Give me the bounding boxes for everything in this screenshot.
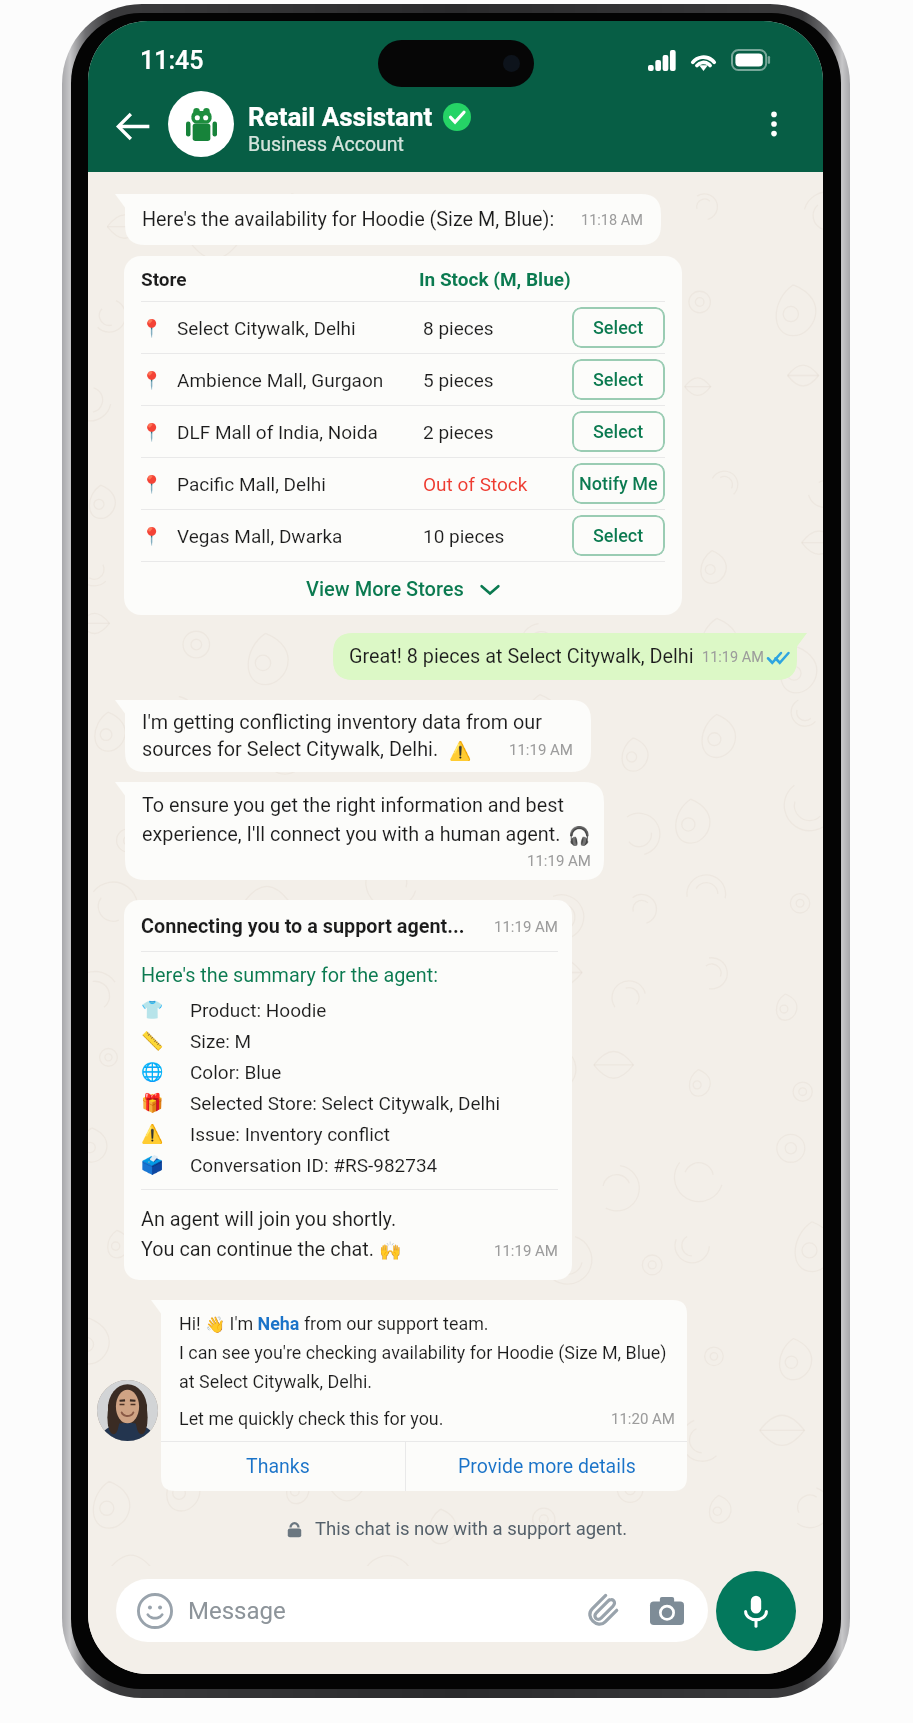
staticText: Connecting you to a support agent... [141, 915, 465, 938]
staticText: To ensure you get the right information … [142, 794, 564, 817]
staticText: Great! 8 pieces at Select Citywalk, Delh… [349, 645, 694, 668]
staticText: Notify Me [579, 473, 658, 494]
staticText: Selected Store: Select Citywalk, Delhi [190, 1092, 501, 1114]
staticText: Message [188, 1597, 286, 1625]
staticText: Let me quickly check this for you. [179, 1408, 444, 1429]
staticText: 11:19 AM [509, 741, 573, 759]
staticText: 🌐 [141, 1061, 164, 1082]
staticText: 📍 [141, 474, 163, 494]
staticText: In Stock (M, Blue) [419, 268, 571, 290]
staticText: Provide more details [458, 1455, 636, 1478]
staticText: Retail Assistant [248, 102, 433, 132]
staticText: View More Stores [306, 577, 464, 600]
staticText: ⚠️ [141, 1123, 164, 1144]
button[interactable]: Camera [648, 1592, 686, 1630]
staticText: experience, I'll connect you with a huma… [142, 823, 561, 846]
staticText: 5 pieces [423, 369, 572, 391]
button[interactable]: Provide more details [406, 1442, 687, 1491]
staticText: 📍 [141, 526, 163, 546]
staticText: Select [593, 369, 644, 390]
staticText: sources for Select Citywalk, Delhi. [142, 738, 439, 761]
staticText: This chat is now with a support agent. [315, 1518, 628, 1540]
button[interactable]: Select [572, 411, 665, 452]
staticText: Business Account [248, 133, 404, 156]
staticText: 📏 [141, 1030, 164, 1051]
staticText: 🎧 [568, 825, 591, 846]
staticText: I can see you're checking availability f… [179, 1342, 667, 1363]
staticText: 📍 [141, 318, 163, 338]
staticText: Here's the summary for the agent: [141, 964, 439, 987]
staticText: 📍 [141, 370, 163, 390]
staticText: Out of Stock [423, 473, 572, 495]
staticText: Select [593, 421, 644, 442]
button[interactable]: Select [572, 307, 665, 348]
staticText: 10 pieces [423, 525, 572, 547]
staticText: Hi! 👋 I'm Neha from our support team. [179, 1313, 489, 1334]
staticText: 8 pieces [423, 317, 572, 339]
button[interactable]: Select [572, 359, 665, 400]
button[interactable]: More options [750, 100, 798, 148]
button[interactable]: Emoji [136, 1592, 174, 1630]
staticText: 11:19 AM [494, 1242, 558, 1260]
button[interactable]: Attach file [584, 1592, 622, 1630]
button[interactable]: Notify Me [572, 463, 665, 504]
staticText: Here's the availability for Hoodie (Size… [142, 208, 555, 231]
staticText: 🙌 [379, 1240, 402, 1261]
button[interactable]: Back [107, 100, 159, 152]
staticText: Issue: Inventory conflict [190, 1123, 390, 1145]
staticText: Select [593, 317, 644, 338]
staticText: Select Citywalk, Delhi [177, 317, 423, 339]
staticText: 📍 [141, 422, 163, 442]
button[interactable]: Select [572, 515, 665, 556]
staticText: 11:19 AM [527, 852, 591, 870]
staticText: Vegas Mall, Dwarka [177, 525, 423, 547]
staticText: Store [141, 268, 419, 290]
staticText: Conversation ID: #RS-982734 [190, 1154, 438, 1176]
staticText: Color: Blue [190, 1061, 282, 1083]
staticText: DLF Mall of India, Noida [177, 421, 423, 443]
staticText: 2 pieces [423, 421, 572, 443]
staticText: Thanks [246, 1455, 310, 1478]
staticText: at Select Citywalk, Delhi. [179, 1371, 372, 1392]
staticText: 🎁 [141, 1092, 164, 1113]
button[interactable]: View More Stores [141, 562, 665, 615]
button[interactable]: Record voice message [716, 1571, 796, 1651]
staticText: Pacific Mall, Delhi [177, 473, 423, 495]
staticText: 🗳️ [141, 1154, 164, 1175]
staticText: Ambience Mall, Gurgaon [177, 369, 423, 391]
staticText: ⚠️ [449, 740, 472, 761]
staticText: I'm getting conflicting inventory data f… [142, 711, 542, 734]
staticText: 11:20 AM [611, 1410, 675, 1428]
staticText: An agent will join you shortly. [141, 1208, 397, 1231]
staticText: 11:19 AM [494, 918, 558, 936]
staticText: 11:19 AM [702, 649, 764, 666]
staticText: Product: Hoodie [190, 999, 327, 1021]
staticText: 11:18 AM [581, 212, 643, 229]
staticText: 👕 [141, 999, 164, 1020]
button[interactable]: Thanks [151, 1442, 405, 1491]
staticText: Size: M [190, 1030, 252, 1052]
staticText: You can continue the chat. [141, 1238, 379, 1261]
staticText: 11:45 [140, 46, 204, 75]
staticText: Select [593, 525, 644, 546]
